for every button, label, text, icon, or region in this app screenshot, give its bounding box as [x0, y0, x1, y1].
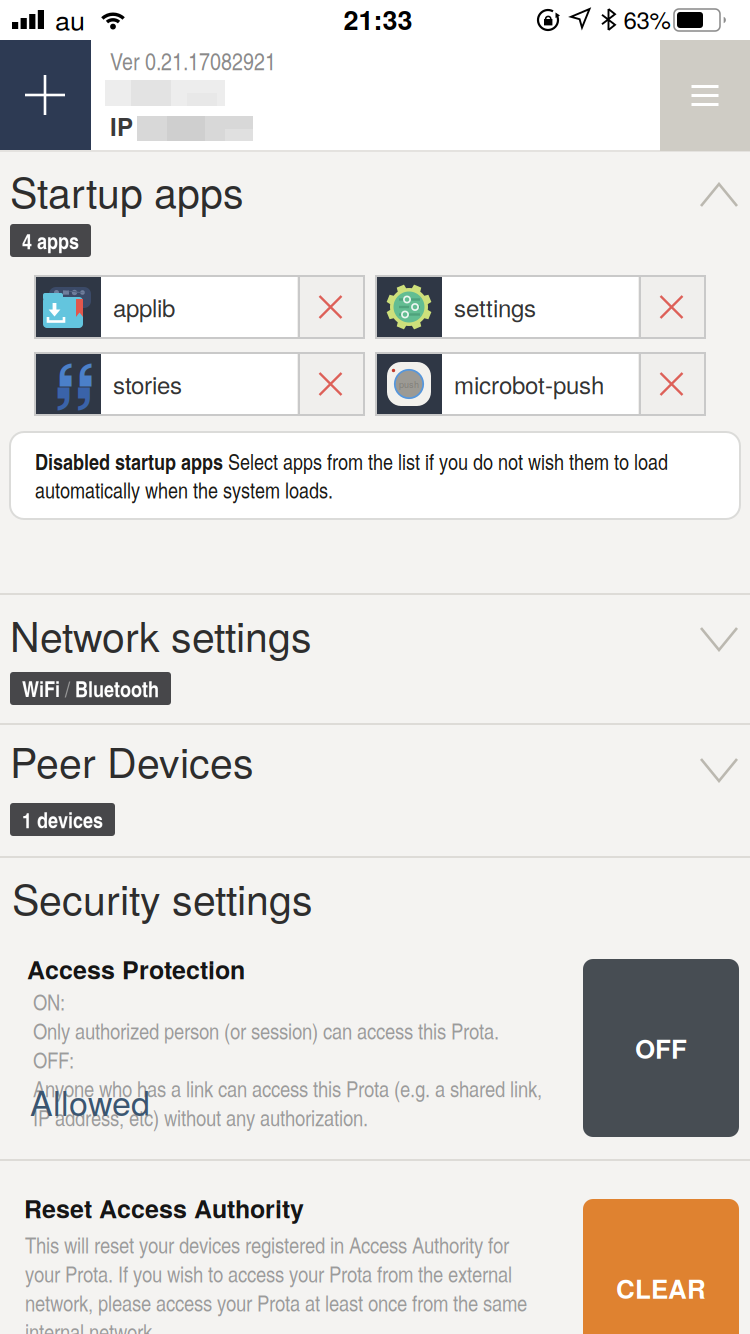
staticText: Reset Access Authority	[24, 1190, 304, 1226]
button[interactable]: Clear access authority	[583, 1199, 739, 1334]
staticText: 1 devices	[22, 804, 103, 835]
staticText: Network settings	[10, 605, 312, 664]
staticText: Bluetooth	[75, 673, 159, 704]
button[interactable]: Turn access protection off	[583, 959, 739, 1137]
staticText: CLEAR	[616, 1269, 706, 1307]
staticText: push	[399, 378, 419, 390]
button[interactable]: Expand Peer Devices	[0, 725, 750, 853]
staticText: Allowed	[30, 1077, 150, 1126]
button[interactable]: Remove applib	[297, 276, 364, 338]
staticText: 21:33	[343, 0, 412, 38]
staticText: Ver 0.21.17082921	[110, 44, 276, 77]
staticText: 4 apps	[22, 225, 79, 256]
staticText: Startup apps	[10, 161, 244, 220]
button[interactable]: Expand Network settings	[0, 595, 750, 720]
staticText: 63%	[623, 2, 670, 36]
staticText: stories	[113, 367, 182, 401]
staticText: WiFi	[22, 673, 60, 704]
staticText: IP	[110, 109, 133, 143]
staticText: ON: Only authorized person (or session) …	[33, 986, 542, 1133]
staticText: applib	[113, 290, 175, 324]
staticText: microbot-push	[454, 367, 604, 401]
button[interactable]: Collapse Startup apps	[0, 150, 750, 267]
staticText: Peer Devices	[10, 731, 254, 790]
staticText: settings	[454, 290, 536, 324]
staticText: OFF	[635, 1029, 687, 1067]
staticText: This will reset your devices registered …	[25, 1229, 527, 1334]
staticText: ”	[51, 352, 95, 478]
staticText: /	[60, 673, 75, 704]
staticText: au	[55, 0, 85, 38]
staticText: Disabled startup apps Select apps from t…	[35, 446, 668, 504]
button[interactable]: Remove microbot-push	[638, 353, 705, 415]
staticText: Security settings	[12, 868, 313, 927]
button[interactable]: Remove settings	[638, 276, 705, 338]
button[interactable]: Add	[0, 40, 91, 151]
staticText: Access Protection	[27, 951, 245, 987]
button[interactable]: Remove stories	[297, 353, 364, 415]
button[interactable]: Menu	[660, 40, 750, 151]
staticText: “	[53, 328, 97, 454]
